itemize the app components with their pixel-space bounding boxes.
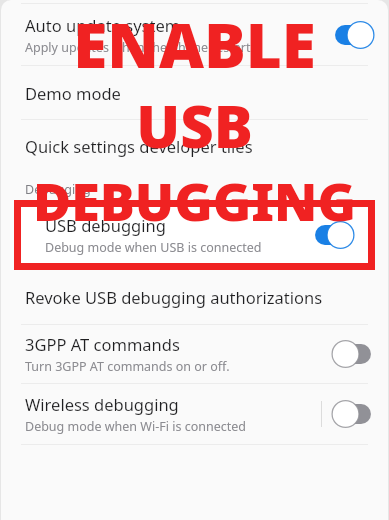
staticText: USB debugging [45,214,166,236]
button[interactable]: Switch on [330,19,376,51]
button[interactable]: Quick settings developer tiles [1,120,388,172]
staticText: Revoke USB debugging authorizations [25,286,323,308]
staticText: Wireless debugging [25,393,179,415]
staticText: 3GPP AT commands [25,333,180,355]
staticText: DEBUGGING [33,165,356,236]
staticText: Debug mode when USB is connected [45,239,262,256]
button[interactable]: Demo mode [1,66,388,119]
staticText: Auto update system [25,14,181,36]
staticText: ENABLE [73,2,316,86]
staticText: Debug mode when Wi-Fi is connected [25,418,246,435]
button[interactable]: Auto update system [1,4,388,65]
button[interactable]: Revoke USB debugging authorizations [1,270,388,324]
button[interactable]: USB debugging [21,207,368,263]
staticText: Apply updates when the phone restarts. [25,39,260,56]
button[interactable]: 3GPP AT commands [1,325,388,383]
staticText: Turn 3GPP AT commands on or off. [25,358,230,375]
button[interactable]: Wireless debugging [1,384,388,444]
button[interactable]: Switch on [310,219,356,251]
button[interactable]: Switch off [330,398,376,430]
staticText: Quick settings developer tiles [25,135,253,157]
staticText: USB [136,86,253,165]
staticText: Demo mode [25,82,121,104]
button[interactable]: Switch off [330,338,376,370]
staticText: Debugging [25,181,91,198]
